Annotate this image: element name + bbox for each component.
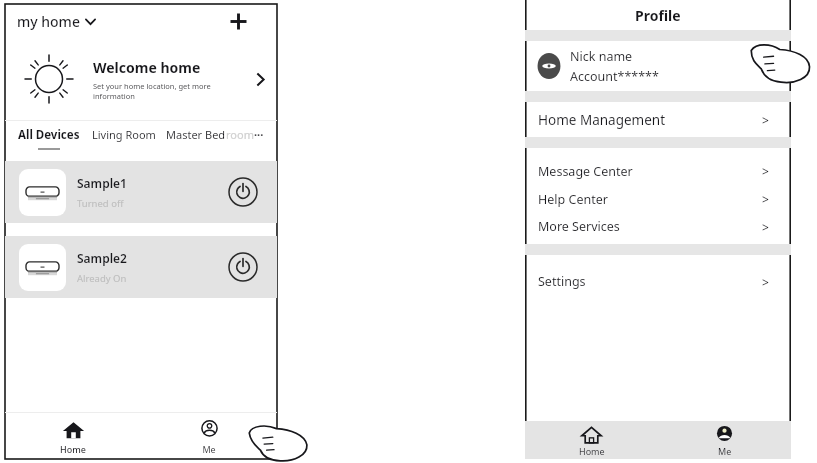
staticText: Account****** — [570, 68, 659, 85]
button[interactable]: my home — [17, 12, 96, 31]
staticText: my home — [17, 12, 80, 31]
button[interactable]: Home — [5, 413, 141, 459]
staticText: Already On — [77, 272, 127, 285]
button[interactable]: Nick name — [525, 41, 791, 91]
button[interactable]: Welcome home — [5, 38, 277, 120]
staticText: All Devices — [18, 127, 80, 143]
staticText: Me — [718, 445, 732, 457]
staticText: > — [762, 112, 769, 128]
staticText: Home Management — [538, 111, 666, 129]
staticText: Home — [60, 443, 86, 455]
button[interactable]: Living Room — [92, 127, 156, 142]
staticText: Sample1 — [77, 175, 127, 191]
button[interactable]: Sample2 — [5, 236, 277, 298]
staticText: > — [762, 191, 769, 207]
staticText: room — [226, 127, 254, 142]
staticText: Message Center — [538, 163, 633, 180]
button[interactable]: Add device — [225, 8, 251, 34]
staticText: Welcome home — [93, 58, 201, 77]
staticText: Profile — [635, 6, 681, 25]
button[interactable]: Me — [141, 413, 277, 459]
button[interactable]: Home Management — [525, 102, 791, 137]
button[interactable]: Sample1 — [5, 161, 277, 223]
button[interactable]: Help Center — [525, 185, 791, 213]
button[interactable]: Master Bed — [166, 127, 226, 142]
staticText: > — [762, 219, 769, 235]
button[interactable]: ··· — [254, 127, 264, 142]
button[interactable]: More Services — [525, 213, 791, 240]
button[interactable]: All Devices — [18, 127, 80, 150]
staticText: Home — [579, 445, 605, 457]
staticText: > — [762, 274, 769, 290]
button[interactable]: Power Sample1 — [221, 170, 265, 214]
staticText: Help Center — [538, 191, 608, 208]
button[interactable]: Me — [658, 421, 791, 459]
staticText: Sample2 — [77, 250, 127, 266]
staticText: Nick name — [570, 48, 633, 65]
button[interactable]: Settings — [525, 268, 791, 295]
staticText: Settings — [538, 273, 586, 290]
staticText: > — [762, 163, 769, 179]
staticText: Me — [202, 443, 216, 455]
button[interactable]: Message Center — [525, 157, 791, 185]
button[interactable]: Home — [525, 421, 658, 459]
staticText: Turned off — [77, 197, 124, 210]
button[interactable]: Power Sample2 — [221, 245, 265, 289]
staticText: Set your home location, get more informa… — [93, 81, 211, 101]
staticText: More Services — [538, 218, 620, 235]
